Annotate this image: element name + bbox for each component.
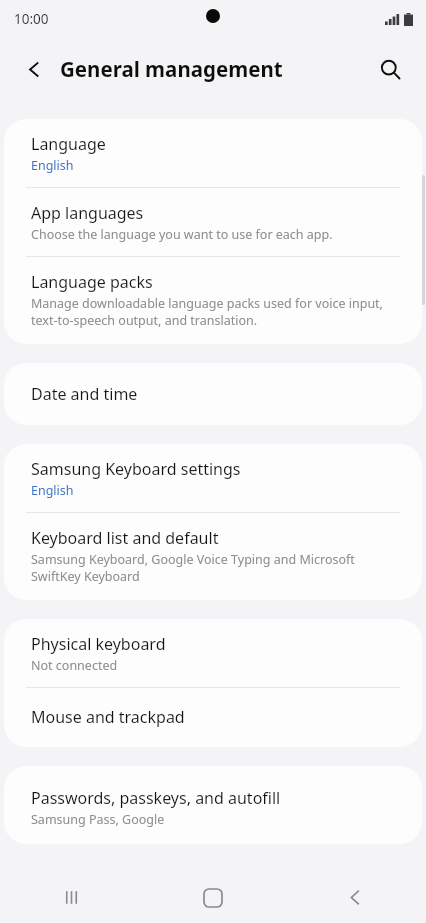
staticText: Not connected xyxy=(31,657,118,674)
staticText: Language packs xyxy=(31,271,153,293)
button[interactable]: Home xyxy=(142,872,284,923)
button[interactable]: App languages xyxy=(4,188,422,256)
staticText: General management xyxy=(60,55,283,83)
button[interactable]: Samsung Keyboard settings xyxy=(4,444,422,512)
staticText: Passwords, passkeys, and autofill xyxy=(31,787,281,809)
staticText: Physical keyboard xyxy=(31,633,166,655)
button[interactable]: Back xyxy=(14,49,54,89)
staticText: Choose the language you want to use for … xyxy=(31,226,333,243)
staticText: Manage downloadable language packs used … xyxy=(31,295,404,329)
button[interactable]: Back xyxy=(284,872,426,923)
button[interactable]: Date and time xyxy=(4,363,422,425)
button[interactable]: Language packs xyxy=(4,257,422,344)
staticText: Language xyxy=(31,133,106,155)
button[interactable]: Physical keyboard xyxy=(4,619,422,687)
staticText: Samsung Pass, Google xyxy=(31,811,165,828)
staticText: Keyboard list and default xyxy=(31,527,219,549)
button[interactable]: Recent apps xyxy=(0,872,142,923)
staticText: Samsung Keyboard, Google Voice Typing an… xyxy=(31,551,404,585)
staticText: App languages xyxy=(31,202,144,224)
staticText: Mouse and trackpad xyxy=(31,706,185,728)
staticText: 10:00 xyxy=(14,10,49,28)
button[interactable]: Search xyxy=(370,49,410,89)
staticText: English xyxy=(31,482,74,499)
staticText: Samsung Keyboard settings xyxy=(31,458,241,480)
button[interactable]: Passwords, passkeys, and autofill xyxy=(4,766,422,844)
button[interactable]: Keyboard list and default xyxy=(4,513,422,600)
staticText: English xyxy=(31,157,74,174)
staticText: Date and time xyxy=(31,383,138,405)
button[interactable]: Mouse and trackpad xyxy=(4,688,422,747)
button[interactable]: Language xyxy=(4,119,422,187)
